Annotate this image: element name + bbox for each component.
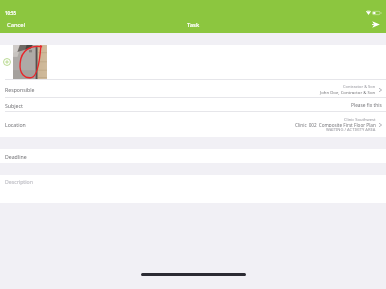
staticText: 10:55 [5, 10, 17, 16]
staticText: Subject [5, 102, 23, 109]
button[interactable]: Send [367, 17, 386, 32]
button[interactable]: Responsible [0, 80, 386, 98]
staticText: John Doe, Contractor & Son [320, 89, 376, 95]
button[interactable]: Location [0, 112, 386, 137]
button[interactable]: Cancel [0, 17, 32, 33]
staticText: Cancel [7, 21, 26, 29]
button[interactable]: Description [0, 175, 386, 203]
staticText: WAITING / ACTIVITY AREA [326, 127, 376, 132]
staticText: Please fix this [351, 102, 382, 109]
button[interactable]: Deadline [0, 149, 386, 163]
button[interactable]: Subject [0, 98, 386, 112]
button[interactable]: Photo [13, 45, 47, 80]
staticText: Contractor & Son [343, 84, 376, 89]
button[interactable]: Add photo [3, 58, 11, 66]
staticText: Responsible [5, 86, 35, 93]
staticText: Task [187, 21, 200, 29]
staticText: Clinic Southwest [344, 117, 376, 122]
staticText: Description [5, 178, 33, 185]
staticText: Location [5, 121, 26, 128]
staticText: Clinic_002_Composite First Floor Plan [295, 122, 376, 127]
staticText: Deadline [5, 153, 27, 160]
